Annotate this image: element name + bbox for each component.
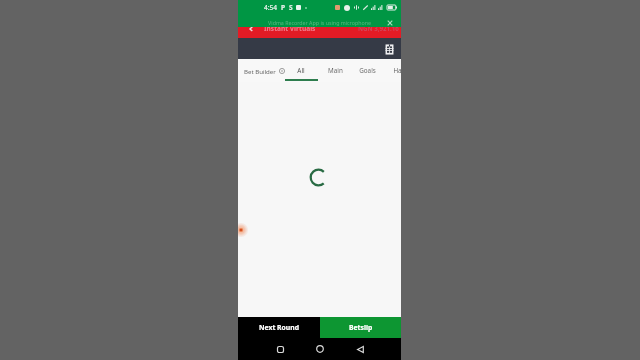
staticText: 4:54	[264, 3, 278, 12]
button[interactable]: Main	[318, 59, 352, 82]
staticText: Vidma Recorder App is using microphone	[238, 19, 401, 26]
button[interactable]: All	[284, 59, 318, 82]
staticText: Betslip	[349, 323, 373, 332]
staticText: Ha	[393, 66, 401, 75]
staticText: S	[289, 3, 293, 12]
staticText: Bet Builder	[244, 67, 276, 75]
button[interactable]: Back	[351, 340, 369, 358]
button[interactable]: Statistics	[382, 42, 396, 56]
staticText: Next Round	[259, 323, 299, 332]
staticText: NGN 3,921.16	[358, 24, 399, 32]
button[interactable]: Recents	[271, 340, 289, 358]
button[interactable]: Ha	[380, 59, 401, 82]
button[interactable]: Home	[311, 340, 329, 358]
staticText: Instant Virtuals	[264, 24, 316, 33]
staticText: Main	[328, 66, 343, 75]
staticText: Goals	[359, 66, 376, 75]
button[interactable]: Next Round	[238, 317, 320, 338]
staticText: P	[281, 3, 286, 12]
button[interactable]: Goals	[350, 59, 384, 82]
button[interactable]: Bet Builder	[244, 67, 285, 75]
button[interactable]: Dismiss notification	[385, 18, 395, 28]
button[interactable]: Back	[246, 24, 255, 33]
button[interactable]: Screen recorder overlay	[238, 223, 248, 237]
button[interactable]: Betslip	[320, 317, 401, 338]
staticText: All	[297, 66, 305, 75]
